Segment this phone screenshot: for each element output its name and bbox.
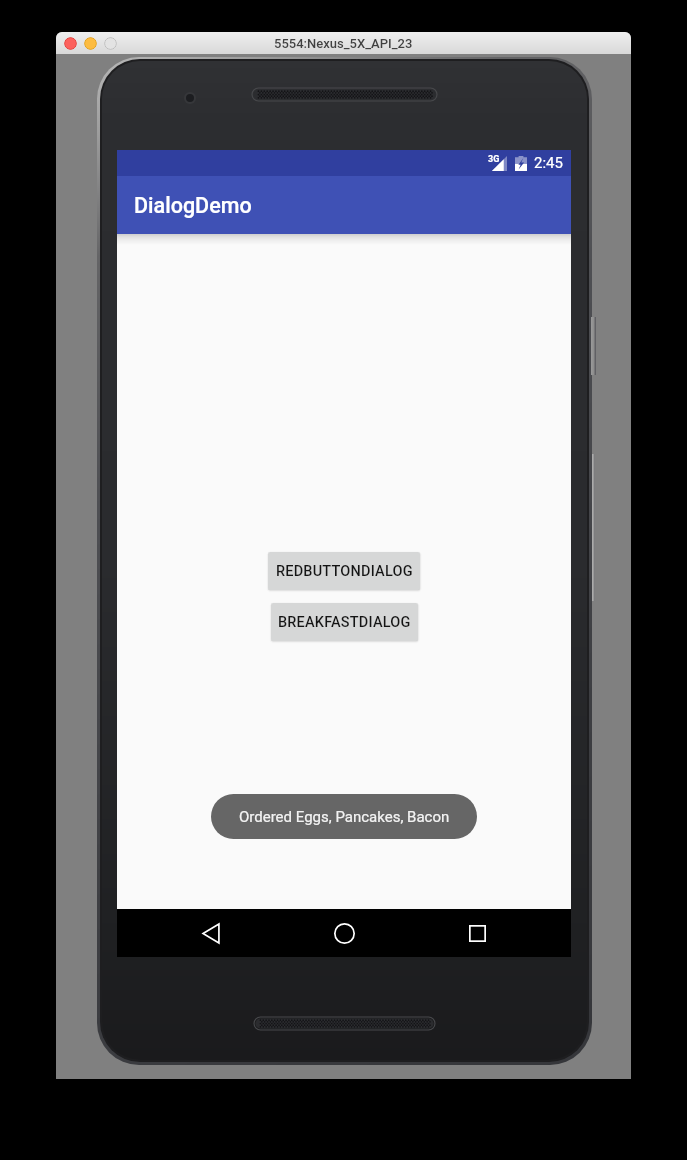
button[interactable]: Zoom window	[104, 37, 117, 50]
button[interactable]: Home	[320, 909, 368, 957]
staticText: REDBUTTONDIALOG	[276, 563, 413, 580]
button[interactable]: REDBUTTONDIALOG	[268, 552, 420, 590]
button[interactable]: Recent apps	[453, 909, 501, 957]
button[interactable]: Minimize window	[84, 37, 97, 50]
button[interactable]: Close window	[64, 37, 77, 50]
staticText: BREAKFASTDIALOG	[278, 614, 411, 631]
staticText: 3G	[488, 154, 500, 165]
staticText: Ordered Eggs, Pancakes, Bacon	[239, 808, 450, 826]
staticText: 2:45	[534, 154, 563, 172]
staticText: DialogDemo	[134, 193, 252, 218]
button[interactable]: BREAKFASTDIALOG	[271, 603, 418, 641]
staticText: 5554:Nexus_5X_API_23	[274, 36, 413, 51]
button[interactable]: Back	[187, 909, 235, 957]
